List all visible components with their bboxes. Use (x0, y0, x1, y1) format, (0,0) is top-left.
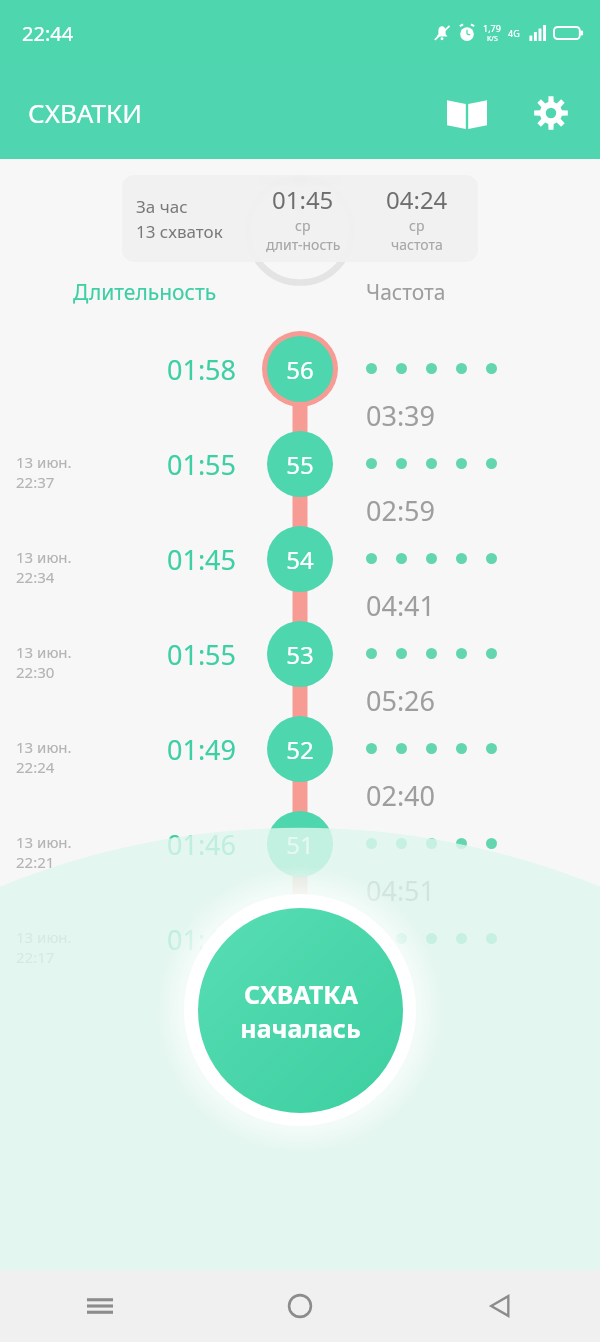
staticText: 01:58 (167, 351, 237, 388)
staticText: 53 (286, 638, 314, 671)
staticText: 55 (286, 448, 314, 481)
staticText: 54 (286, 543, 314, 576)
staticText: СХВАТКИ (28, 95, 142, 130)
button[interactable]: Home (200, 1270, 400, 1342)
button[interactable]: Settings (528, 90, 574, 136)
staticText: 01:46 (167, 826, 237, 863)
staticText: 22:34 (16, 567, 55, 587)
button[interactable]: За час (122, 175, 478, 262)
button[interactable]: 55 (267, 431, 333, 497)
staticText: 13 июн. (16, 832, 72, 852)
staticText: 01:55 (167, 636, 237, 673)
staticText: 01:45 (167, 541, 237, 578)
staticText: 22:30 (16, 662, 55, 682)
staticText: 13 июн. (16, 927, 72, 947)
button[interactable]: Recents (0, 1270, 200, 1342)
staticText: 22:37 (16, 472, 55, 492)
staticText: 22:21 (16, 852, 55, 872)
staticText: Длительность (73, 278, 217, 307)
staticText: 04:41 (366, 587, 436, 624)
staticText: 04:24 (386, 183, 448, 216)
button[interactable]: Back (400, 1270, 600, 1342)
staticText: ср (409, 216, 425, 235)
staticText: 05:26 (366, 682, 436, 719)
staticText: 1,79 (483, 22, 501, 34)
button[interactable]: 53 (267, 621, 333, 687)
button[interactable]: 52 (267, 716, 333, 782)
staticText: началась (240, 1011, 361, 1045)
staticText: 56 (286, 353, 314, 386)
staticText: 13 схваток (136, 220, 223, 243)
button[interactable]: 51 (267, 811, 333, 877)
staticText: K/S (487, 34, 498, 44)
staticText: 51 (286, 828, 314, 861)
staticText: За час (136, 195, 188, 218)
staticText: 4G (508, 27, 520, 39)
staticText: длит-ность (266, 235, 341, 254)
staticText: 13 июн. (16, 737, 72, 757)
staticText: Частота (366, 278, 446, 307)
staticText: 01:45 (272, 183, 334, 216)
staticText: 03:39 (366, 397, 436, 434)
button[interactable]: 50 (267, 906, 333, 972)
staticText: 02:40 (366, 777, 436, 814)
staticText: 04:51 (366, 872, 436, 909)
staticText: ср (295, 216, 311, 235)
staticText: СХВАТКА (244, 977, 358, 1011)
staticText: 13 июн. (16, 547, 72, 567)
staticText: 13 июн. (16, 642, 72, 662)
staticText: 01:44 (167, 921, 237, 958)
staticText: 01:55 (167, 446, 237, 483)
staticText: 22:44 (22, 20, 74, 47)
button[interactable]: 56 (267, 336, 333, 402)
button[interactable]: 54 (267, 526, 333, 592)
staticText: 01:49 (167, 731, 237, 768)
staticText: 13 июн. (16, 452, 72, 472)
button[interactable]: СХВАТКА (198, 908, 403, 1113)
staticText: 22:24 (16, 757, 55, 777)
staticText: 22:17 (16, 947, 55, 967)
staticText: частота (391, 235, 443, 254)
staticText: 02:59 (366, 492, 436, 529)
button[interactable]: Guide (444, 90, 490, 136)
staticText: 52 (286, 733, 314, 766)
